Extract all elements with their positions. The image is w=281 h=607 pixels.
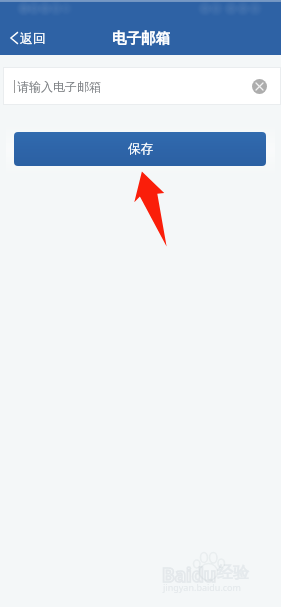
button[interactable]: Clear text	[252, 79, 267, 94]
staticText: 电子邮箱	[112, 29, 170, 47]
staticText: jingyan.baidu.com	[163, 581, 241, 593]
staticText: Baidu	[162, 562, 217, 588]
staticText: 返回	[20, 30, 46, 46]
staticText: 保存	[128, 141, 153, 157]
button[interactable]: 保存	[14, 132, 266, 166]
staticText: 经验	[217, 563, 249, 583]
staticText: 请输入电子邮箱	[17, 79, 101, 94]
button[interactable]: 返回	[0, 24, 56, 52]
